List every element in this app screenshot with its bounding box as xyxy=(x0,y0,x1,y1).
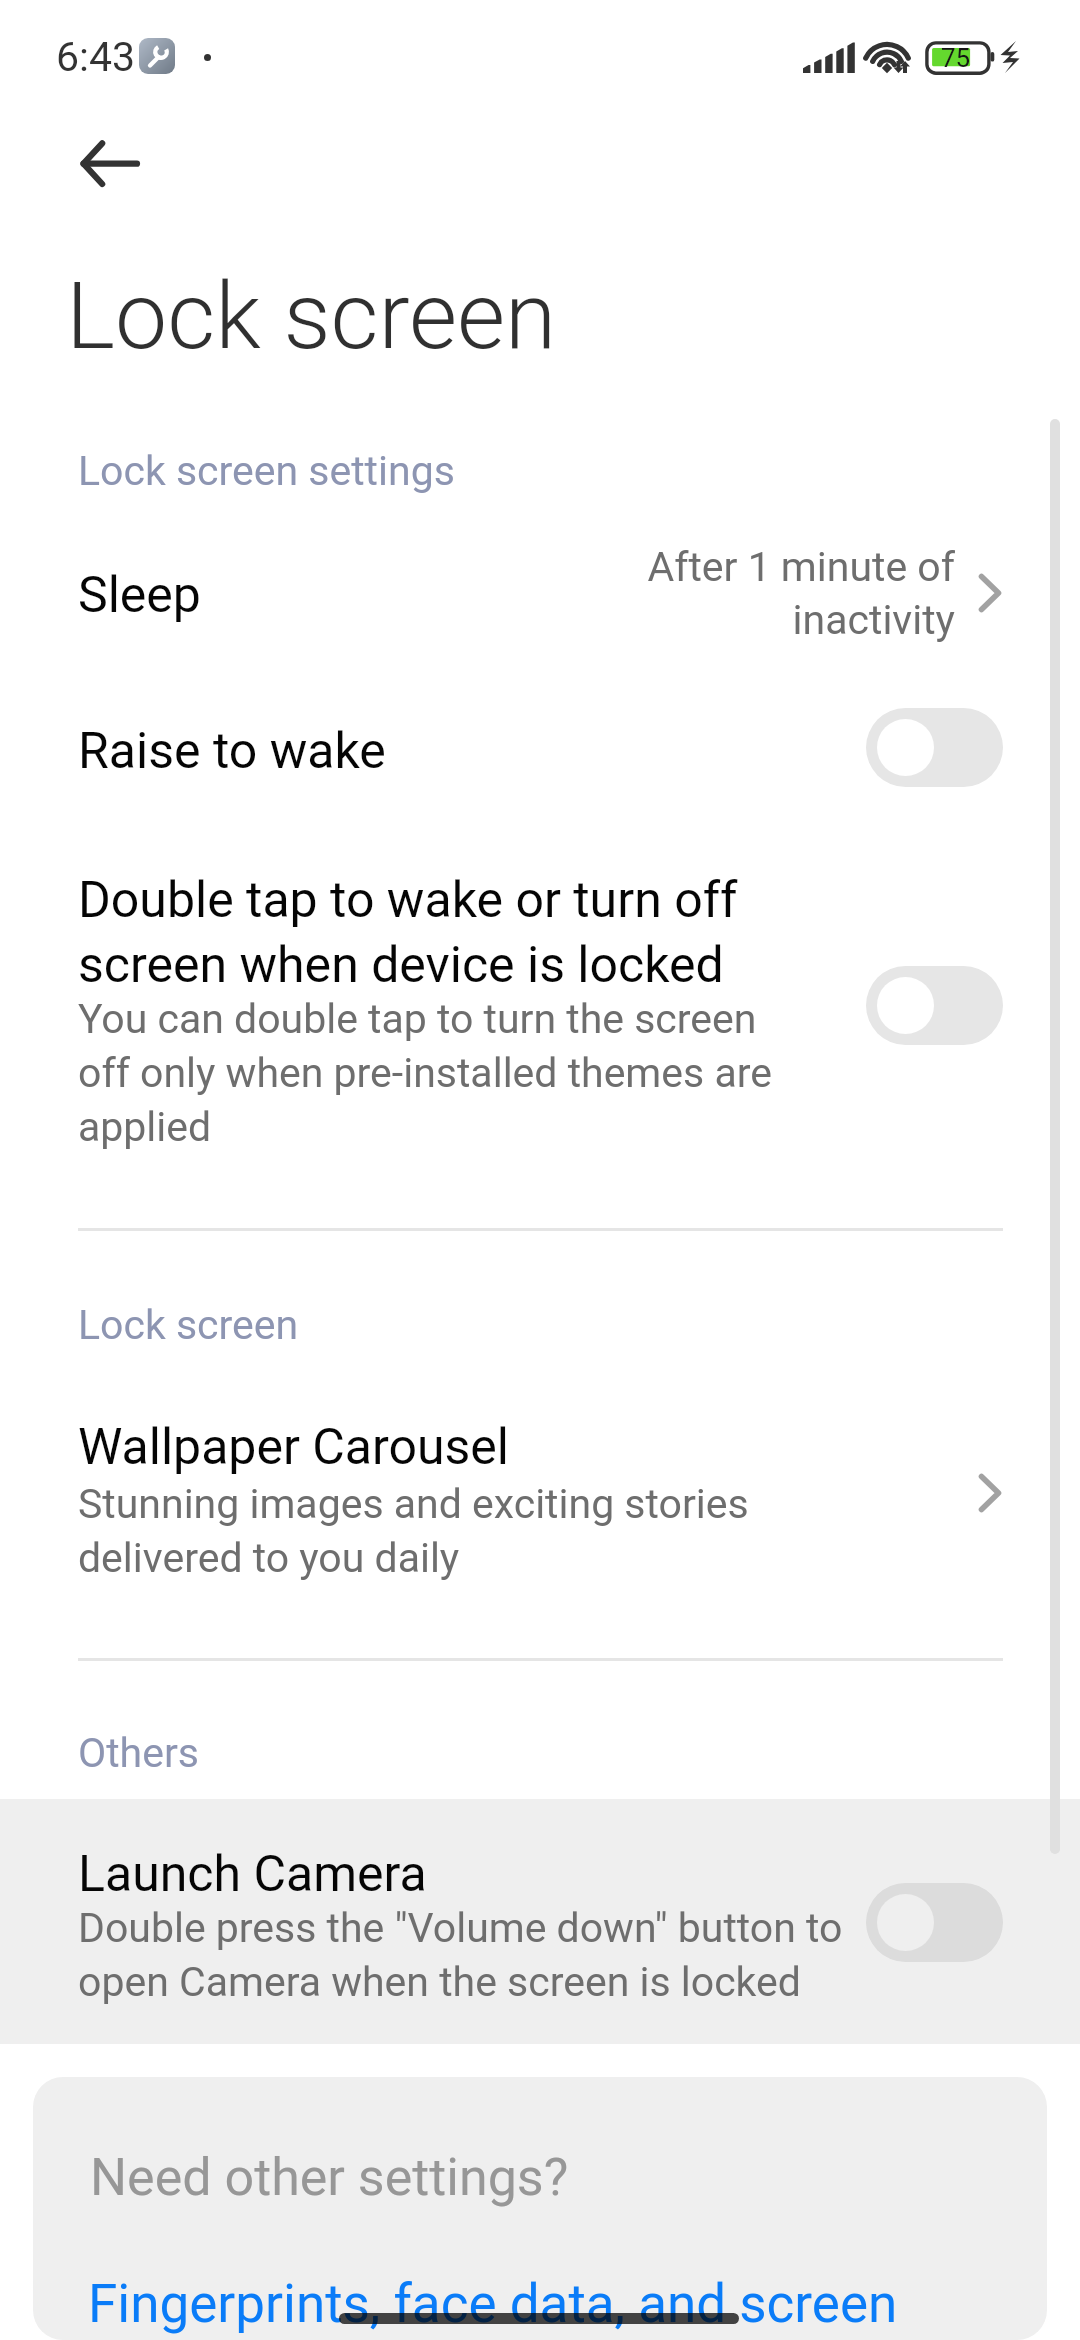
staticText: Lock screen xyxy=(66,262,557,371)
staticText: Others xyxy=(78,1729,199,1777)
button[interactable]: Launch Camera xyxy=(0,1799,1080,2044)
staticText: Raise to wake xyxy=(78,722,386,781)
staticText: Sleep xyxy=(78,566,201,625)
button[interactable]: Fingerprints, face data, and screen xyxy=(73,2263,953,2340)
staticText: Wallpaper Carousel xyxy=(78,1418,510,1477)
staticText: Double press the "Volume down" button to… xyxy=(78,1904,878,2006)
staticText: Fingerprints, face data, and screen xyxy=(88,2273,898,2335)
staticText: Double tap to wake or turn off screen wh… xyxy=(78,871,818,995)
button[interactable]: Double tap to wake, off xyxy=(866,966,1003,1045)
button[interactable]: Back xyxy=(52,112,162,222)
staticText: After 1 minute of inactivity xyxy=(643,543,955,644)
button[interactable]: Need other settings? xyxy=(33,2077,1047,2340)
staticText: Stunning images and exciting stories del… xyxy=(78,1480,818,1582)
staticText: Lock screen xyxy=(78,1301,299,1349)
button[interactable]: Launch Camera, off xyxy=(866,1883,1003,1962)
other: Open xyxy=(978,573,1002,613)
staticText: Lock screen settings xyxy=(78,447,455,495)
staticText: 6:43 xyxy=(56,33,136,81)
button[interactable]: Raise to wake xyxy=(0,674,1080,824)
other: Open xyxy=(978,1473,1002,1513)
staticText: 75 xyxy=(941,43,971,73)
button[interactable]: Wallpaper Carousel xyxy=(0,1378,1080,1618)
button[interactable]: Double tap to wake or turn off screen wh… xyxy=(0,844,1080,1184)
staticText: Need other settings? xyxy=(90,2147,569,2208)
staticText: You can double tap to turn the screen of… xyxy=(78,995,818,1151)
button[interactable]: Sleep xyxy=(0,518,1080,673)
staticText: Launch Camera xyxy=(78,1845,427,1904)
button[interactable]: Raise to wake, off xyxy=(866,708,1003,787)
